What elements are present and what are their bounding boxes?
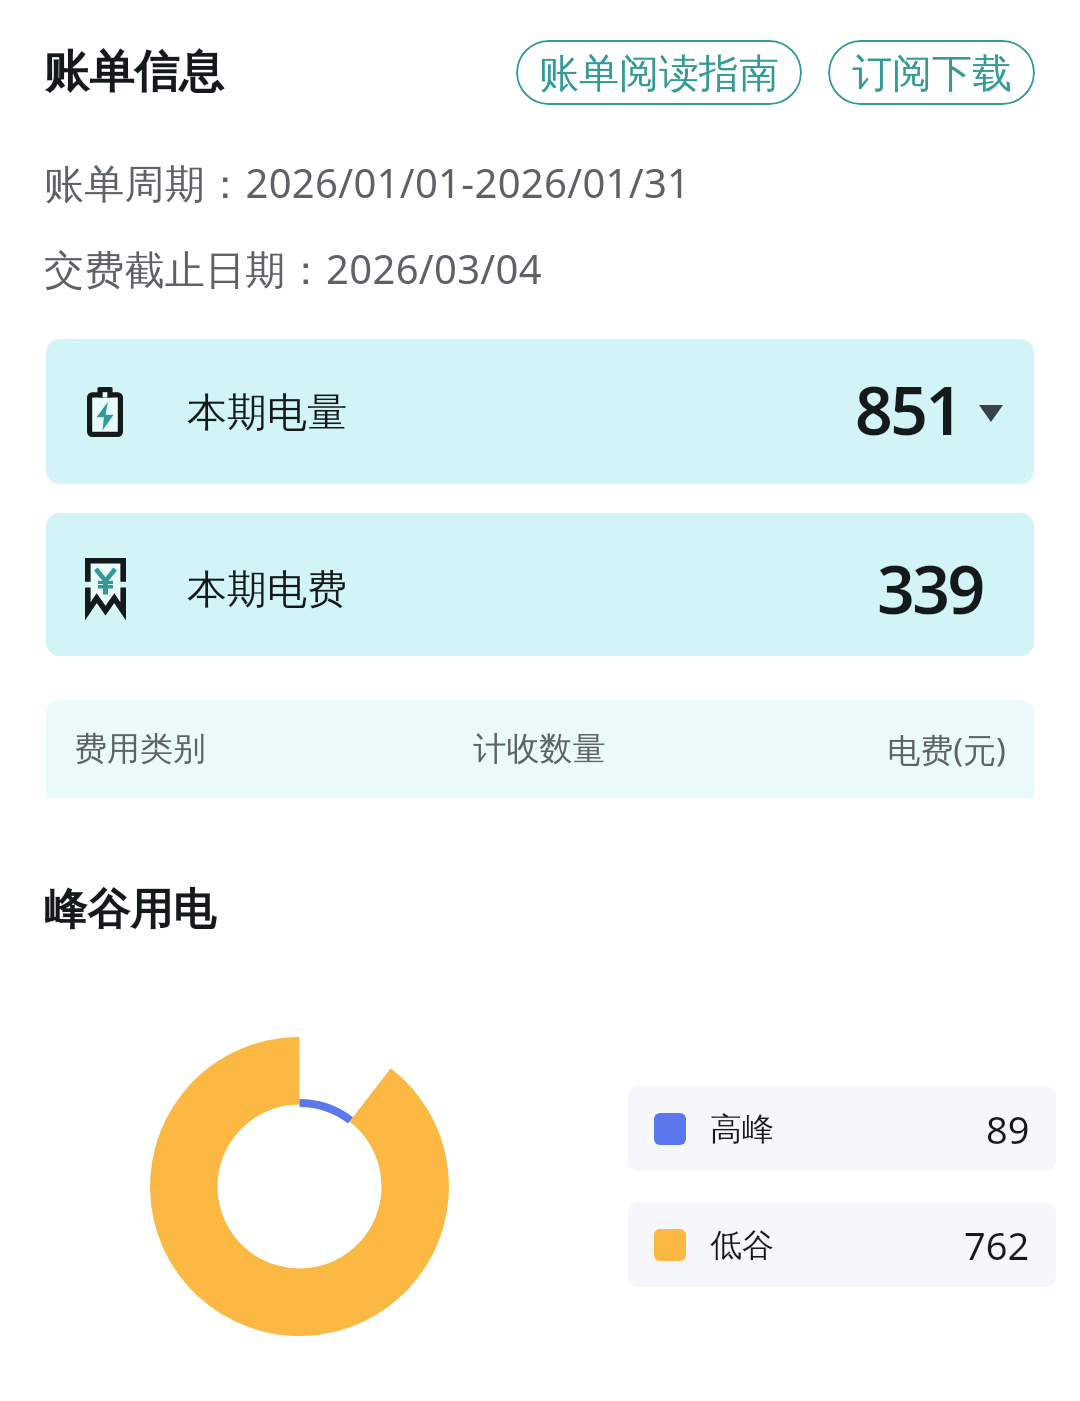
button[interactable]: 高峰 xyxy=(628,1086,1056,1171)
staticText: 762 xyxy=(964,1219,1030,1271)
button[interactable]: 展开本期电量明细 xyxy=(979,405,1003,422)
staticText: 本期电量 xyxy=(187,387,347,437)
button[interactable]: 本期电量 xyxy=(46,339,1034,484)
button[interactable]: 订阅下载 xyxy=(828,40,1035,105)
button[interactable]: 账单阅读指南 xyxy=(516,40,802,105)
staticText: 高峰 xyxy=(710,1109,774,1149)
staticText: 费用类别 xyxy=(74,728,374,770)
staticText: 账单信息 xyxy=(44,44,224,101)
staticText: 账单周期：2026/01/01-2026/01/31 xyxy=(44,155,691,210)
staticText: 交费截止日期：2026/03/04 xyxy=(44,241,542,296)
staticText: 订阅下载 xyxy=(852,48,1012,98)
staticText: 电费(元) xyxy=(705,727,1006,772)
staticText: 账单阅读指南 xyxy=(539,48,779,98)
button[interactable]: 本期电费 xyxy=(46,513,1034,656)
staticText: 计收数量 xyxy=(374,728,705,770)
staticText: 本期电费 xyxy=(187,564,347,614)
button[interactable]: 低谷 xyxy=(628,1202,1056,1287)
staticText: 峰谷用电 xyxy=(44,883,216,937)
staticText: 851 xyxy=(855,364,961,454)
staticText: 89 xyxy=(986,1103,1030,1155)
staticText: 339 xyxy=(877,543,983,633)
staticText: 低谷 xyxy=(710,1225,774,1265)
